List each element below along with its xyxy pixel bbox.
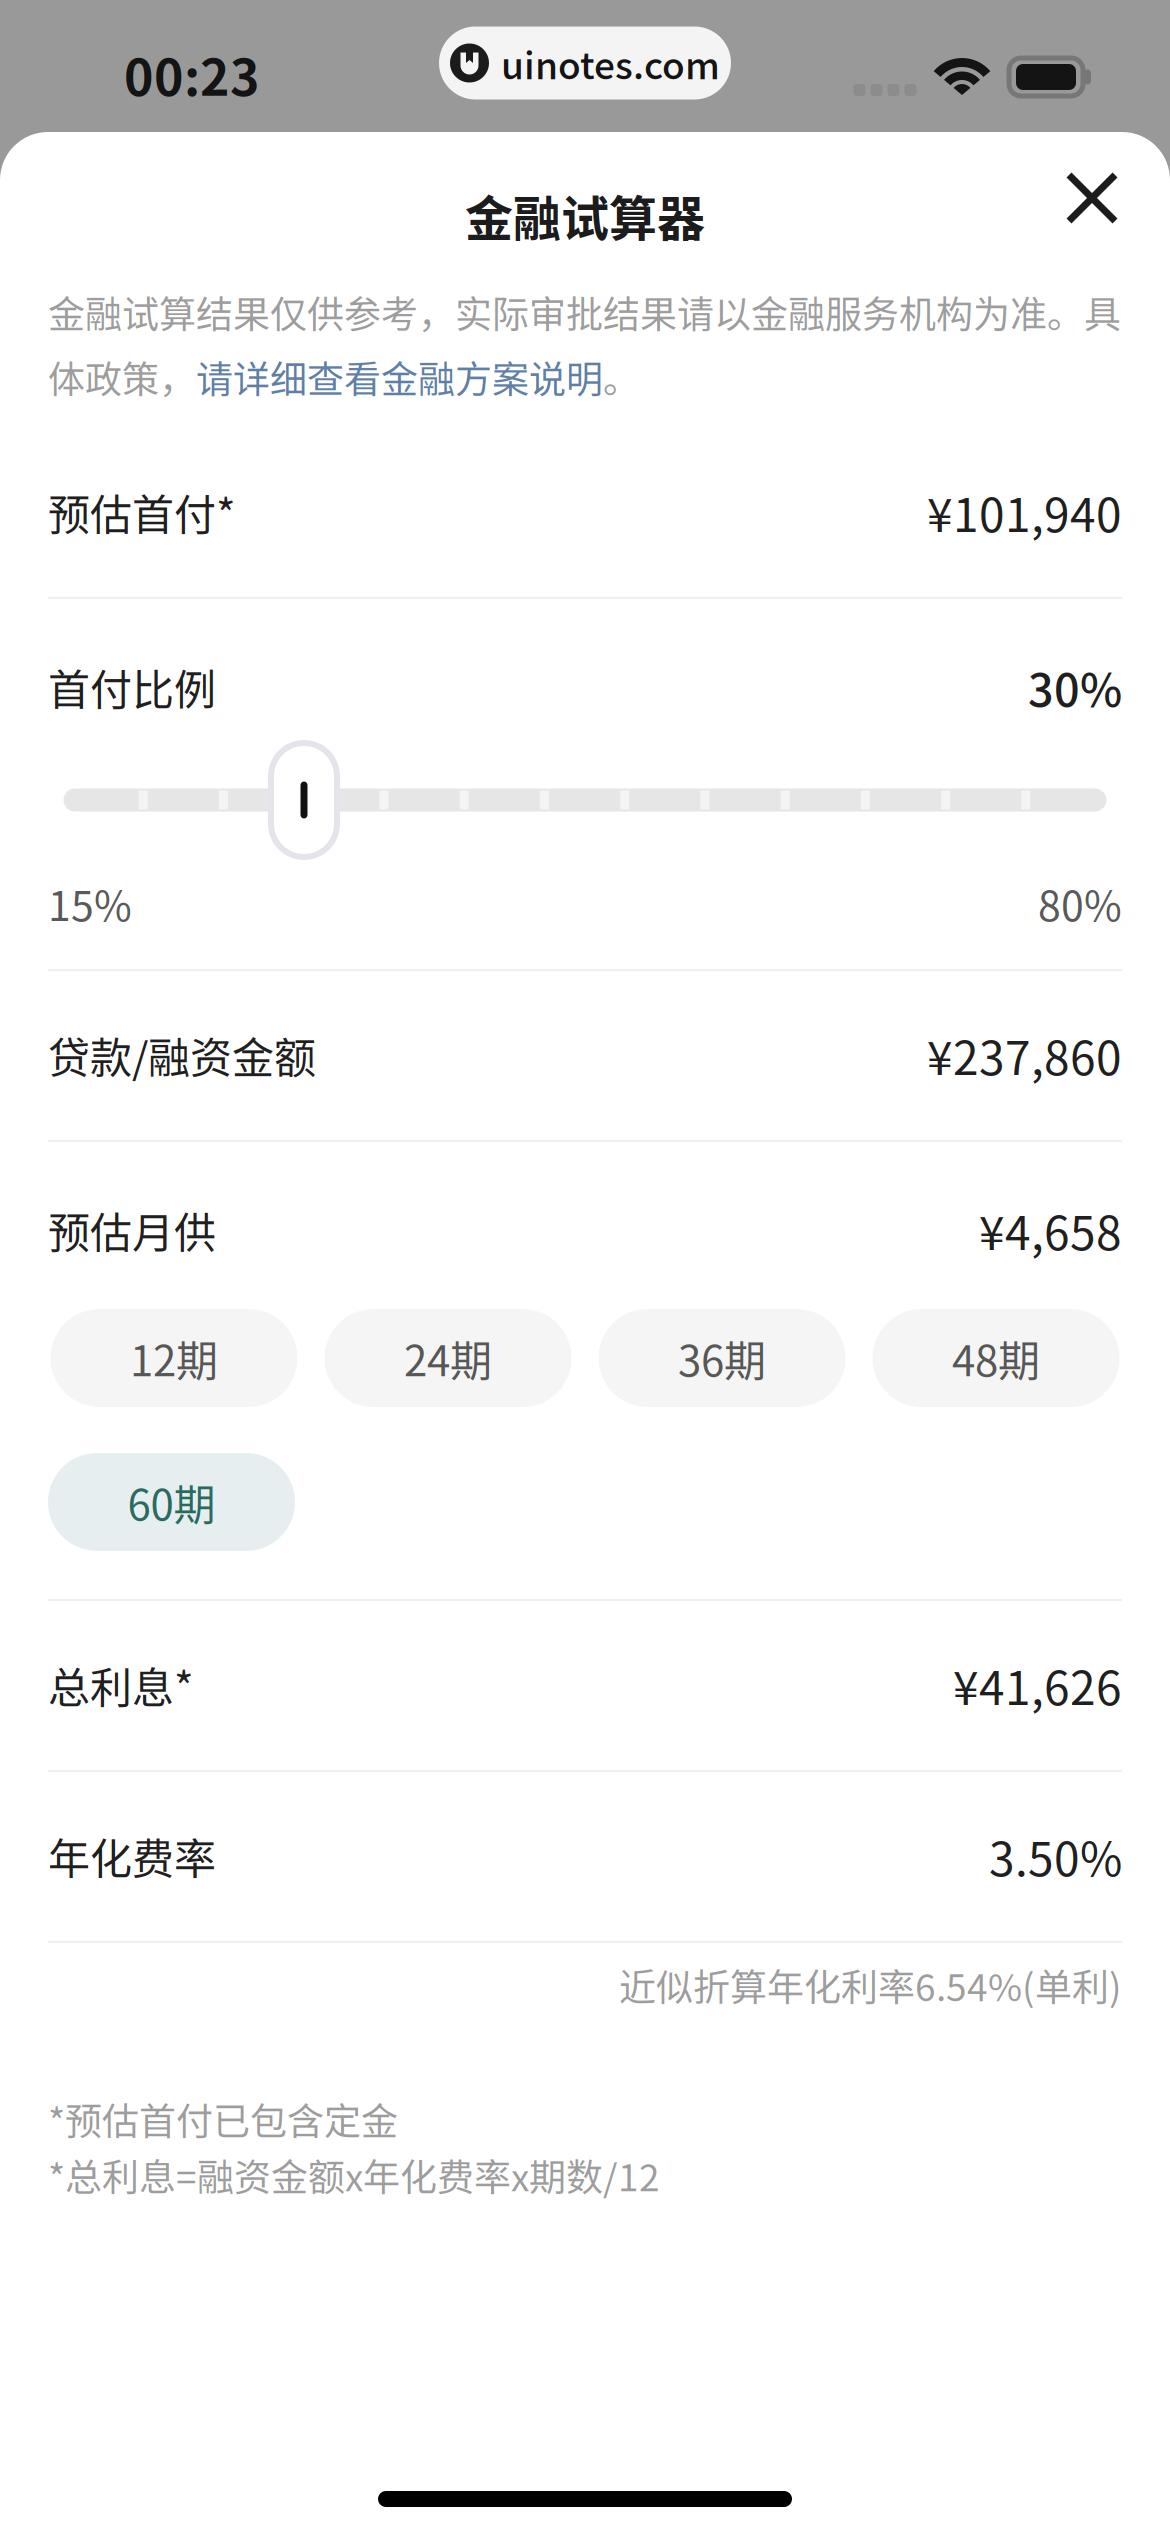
staticText: ¥4,658: [979, 1197, 1122, 1263]
staticText: 首付比例: [48, 657, 216, 717]
button[interactable]: 60期: [48, 1453, 295, 1551]
staticText: 。: [603, 350, 640, 404]
button[interactable]: 请详细查看金融方案说明: [196, 350, 603, 404]
staticText: ¥237,860: [927, 1022, 1122, 1088]
staticText: 贷款/融资金额: [48, 1025, 316, 1085]
staticText: 00:23: [124, 38, 260, 110]
button[interactable]: 12期: [50, 1309, 297, 1407]
staticText: 金融试算结果仅供参考，实际审批结果请以金融服务机构为准。具: [48, 285, 1121, 339]
staticText: 48期: [952, 1328, 1040, 1388]
staticText: uinotes.com: [501, 36, 720, 90]
staticText: ¥41,626: [953, 1652, 1122, 1718]
staticText: *预估首付已包含定金: [48, 2092, 398, 2146]
staticText: 预估月供: [48, 1200, 216, 1260]
staticText: 15%: [48, 873, 132, 933]
button[interactable]: 24期: [324, 1309, 571, 1407]
staticText: *总利息=融资金额x年化费率x期数/12: [48, 2148, 660, 2202]
staticText: 金融试算器: [465, 180, 705, 250]
staticText: 总利息*: [48, 1655, 194, 1715]
staticText: 近似折算年化利率6.54%(单利): [619, 1958, 1122, 2012]
button[interactable]: 48期: [872, 1309, 1119, 1407]
staticText: 36期: [678, 1328, 766, 1388]
button[interactable]: 36期: [598, 1309, 845, 1407]
staticText: 80%: [1038, 873, 1122, 933]
staticText: 12期: [130, 1328, 218, 1388]
staticText: 60期: [127, 1472, 215, 1532]
staticText: 30%: [1028, 654, 1122, 720]
staticText: 体政策，: [48, 350, 196, 404]
staticText: 年化费率: [48, 1826, 216, 1886]
staticText: 3.50%: [989, 1823, 1122, 1889]
staticText: 请详细查看金融方案说明: [196, 350, 603, 404]
staticText: ¥101,940: [927, 479, 1122, 545]
staticText: 24期: [404, 1328, 492, 1388]
button[interactable]: Close: [1044, 150, 1140, 246]
staticText: 预估首付*: [48, 482, 236, 542]
